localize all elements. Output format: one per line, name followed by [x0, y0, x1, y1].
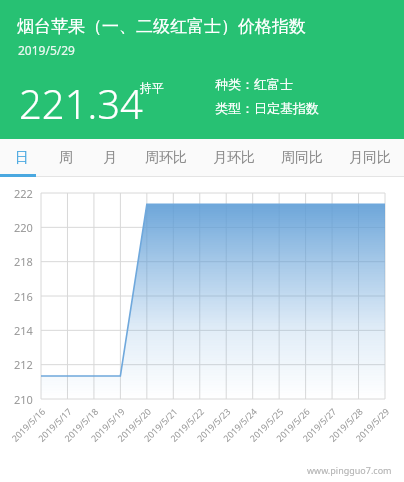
staticText: 月 [103, 149, 117, 167]
button[interactable]: 月同比 [336, 139, 404, 177]
staticText: 周 [59, 149, 73, 167]
staticText: 周环比 [145, 149, 187, 167]
staticText: 持平 [140, 80, 164, 95]
staticText: 221.34 [19, 76, 143, 130]
staticText: 周同比 [281, 149, 323, 167]
staticText: 2019/5/29 [18, 42, 75, 58]
staticText: 种类：红富士 [215, 76, 293, 92]
button[interactable]: 周 [44, 139, 88, 177]
button[interactable]: 日 [0, 139, 44, 177]
button[interactable]: 月 [88, 139, 132, 177]
staticText: 月环比 [213, 149, 255, 167]
staticText: 月同比 [349, 149, 391, 167]
staticText: 类型：日定基指数 [215, 100, 319, 116]
staticText: 日 [15, 149, 29, 167]
button[interactable]: 周同比 [268, 139, 336, 177]
button[interactable]: 周环比 [132, 139, 200, 177]
staticText: 烟台苹果（一、二级红富士）价格指数 [17, 16, 306, 37]
button[interactable]: 月环比 [200, 139, 268, 177]
